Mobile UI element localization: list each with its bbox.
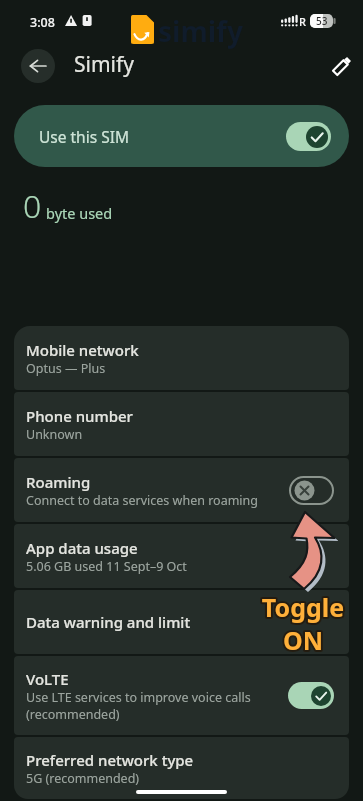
button[interactable]: Preferred network type [14,737,349,799]
staticText: Toggle [257,590,349,624]
staticText: 5.06 GB used 11 Sept–9 Oct [26,558,187,575]
staticText: ON [257,623,349,657]
button[interactable]: Phone number [14,392,349,456]
staticText: Use this SIM [39,126,129,147]
staticText: Optus — Plus [26,360,106,377]
button[interactable]: Toggle on [288,682,334,709]
staticText: App data usage [26,538,138,558]
staticText: Connect to data services when roaming [26,492,258,509]
staticText: Toggle [257,590,349,624]
staticText: R [299,14,306,29]
staticText: ON [257,623,349,657]
staticText: 3:08 [30,14,55,31]
staticText: 5G (recommended) [26,770,140,787]
staticText: 0 [23,184,42,228]
staticText: Unknown [26,426,83,443]
button[interactable]: App data usage [14,524,349,588]
staticText: Data warning and limit [26,612,191,632]
staticText: VoLTE [26,669,69,689]
button[interactable]: Data warning and limit [14,590,349,654]
staticText: Phone number [26,406,133,426]
staticText: Simify [74,50,134,79]
button[interactable]: Mobile network [14,326,349,390]
button[interactable]: Use this SIM [14,105,349,167]
button[interactable]: Roaming [14,458,349,522]
button[interactable]: Toggle on [286,122,331,151]
staticText: 53 [316,14,328,28]
staticText: (recommended) [26,706,120,723]
button[interactable]: Back [21,49,55,83]
button[interactable]: VoLTE [14,656,349,735]
button[interactable]: Edit [325,49,359,83]
staticText: Mobile network [26,340,139,360]
button[interactable]: Toggle off [289,476,334,505]
staticText: Use LTE services to improve voice calls [26,689,251,706]
staticText: simify [158,12,243,50]
staticText: Roaming [26,472,91,492]
staticText: Preferred network type [26,750,194,770]
staticText: byte used [46,203,113,223]
